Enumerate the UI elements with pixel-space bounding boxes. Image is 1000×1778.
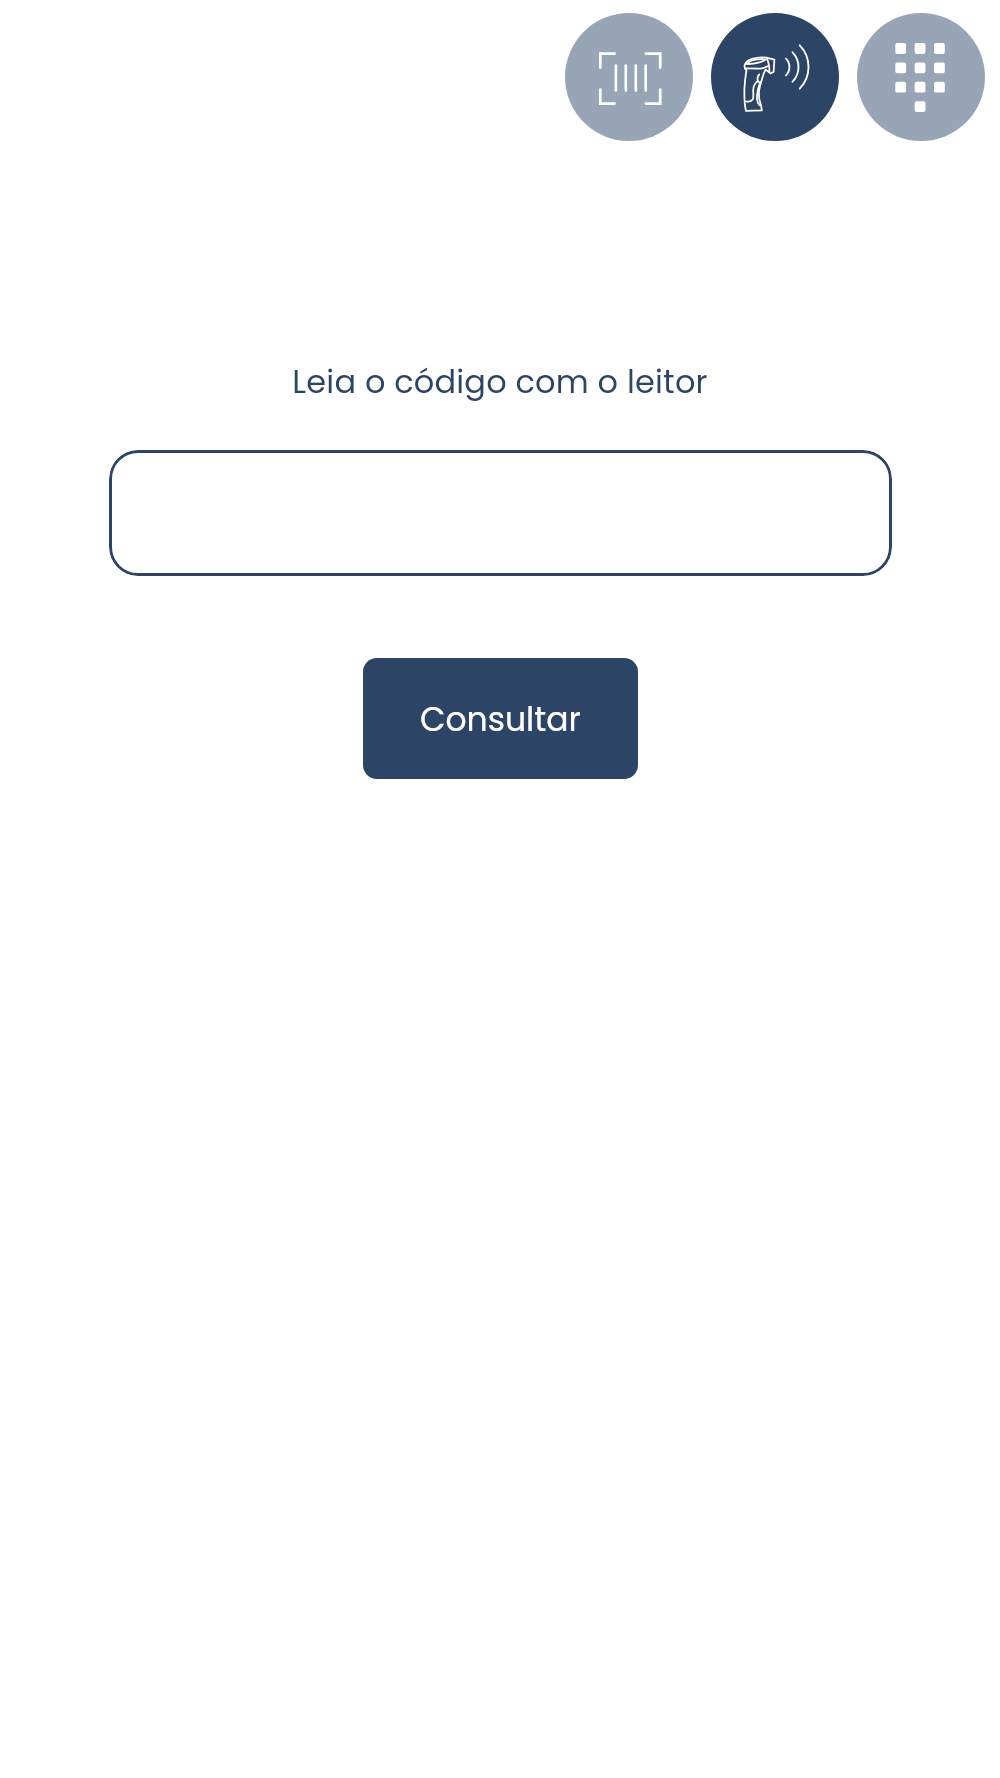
button[interactable]: Consultar (363, 658, 638, 779)
button[interactable] (109, 450, 892, 576)
button[interactable]: Scan barcode (565, 13, 693, 141)
staticText: Consultar (420, 696, 581, 742)
button[interactable]: Keypad entry (857, 13, 985, 141)
button[interactable]: Barcode reader (711, 13, 839, 141)
staticText: Leia o código com o leitor (292, 359, 708, 404)
